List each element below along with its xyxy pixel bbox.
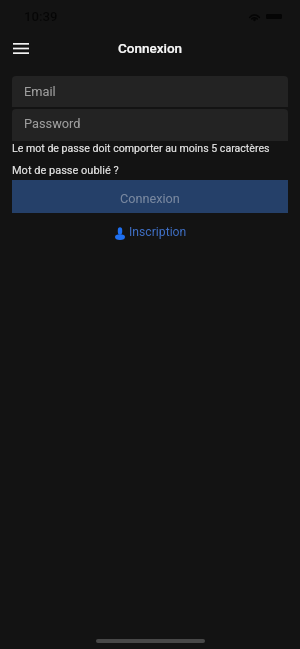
staticText: Email bbox=[24, 84, 56, 99]
button[interactable]: Connexion bbox=[12, 180, 288, 213]
button[interactable]: Inscription bbox=[0, 222, 300, 242]
staticText: Connexion bbox=[120, 191, 180, 206]
staticText: Password bbox=[24, 116, 81, 131]
staticText: Mot de passe oublié ? bbox=[12, 164, 120, 177]
button[interactable]: Email bbox=[12, 76, 288, 107]
staticText: Le mot de passe doit comporter au moins … bbox=[12, 142, 270, 154]
staticText: Inscription bbox=[129, 225, 187, 239]
button[interactable]: Open navigation menu bbox=[5, 32, 37, 64]
staticText: Connexion bbox=[118, 40, 183, 56]
other: Wi-Fi bbox=[248, 13, 261, 21]
button[interactable]: Mot de passe oublié ? bbox=[12, 163, 120, 177]
button[interactable]: Password bbox=[12, 109, 288, 141]
staticText: 10:39 bbox=[24, 9, 58, 24]
